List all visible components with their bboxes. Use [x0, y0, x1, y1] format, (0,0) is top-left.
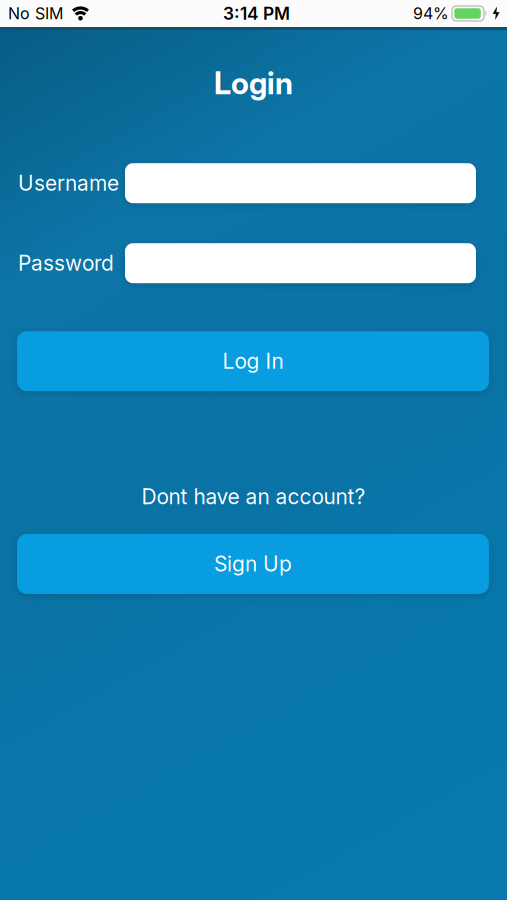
button[interactable]: Sign Up — [17, 534, 489, 594]
staticText: Login — [214, 65, 293, 101]
button[interactable]: Username — [125, 163, 476, 203]
staticText: Log In — [222, 349, 283, 374]
staticText: Password — [18, 251, 114, 276]
staticText: Sign Up — [214, 552, 292, 576]
staticText: Username — [18, 171, 119, 196]
button[interactable]: Log In — [17, 331, 489, 391]
staticText: 94% — [413, 4, 449, 23]
staticText: Dont have an account? — [141, 484, 365, 509]
button[interactable]: Password — [125, 243, 476, 283]
staticText: 3:14 PM — [223, 3, 290, 24]
staticText: No SIM — [8, 4, 63, 23]
